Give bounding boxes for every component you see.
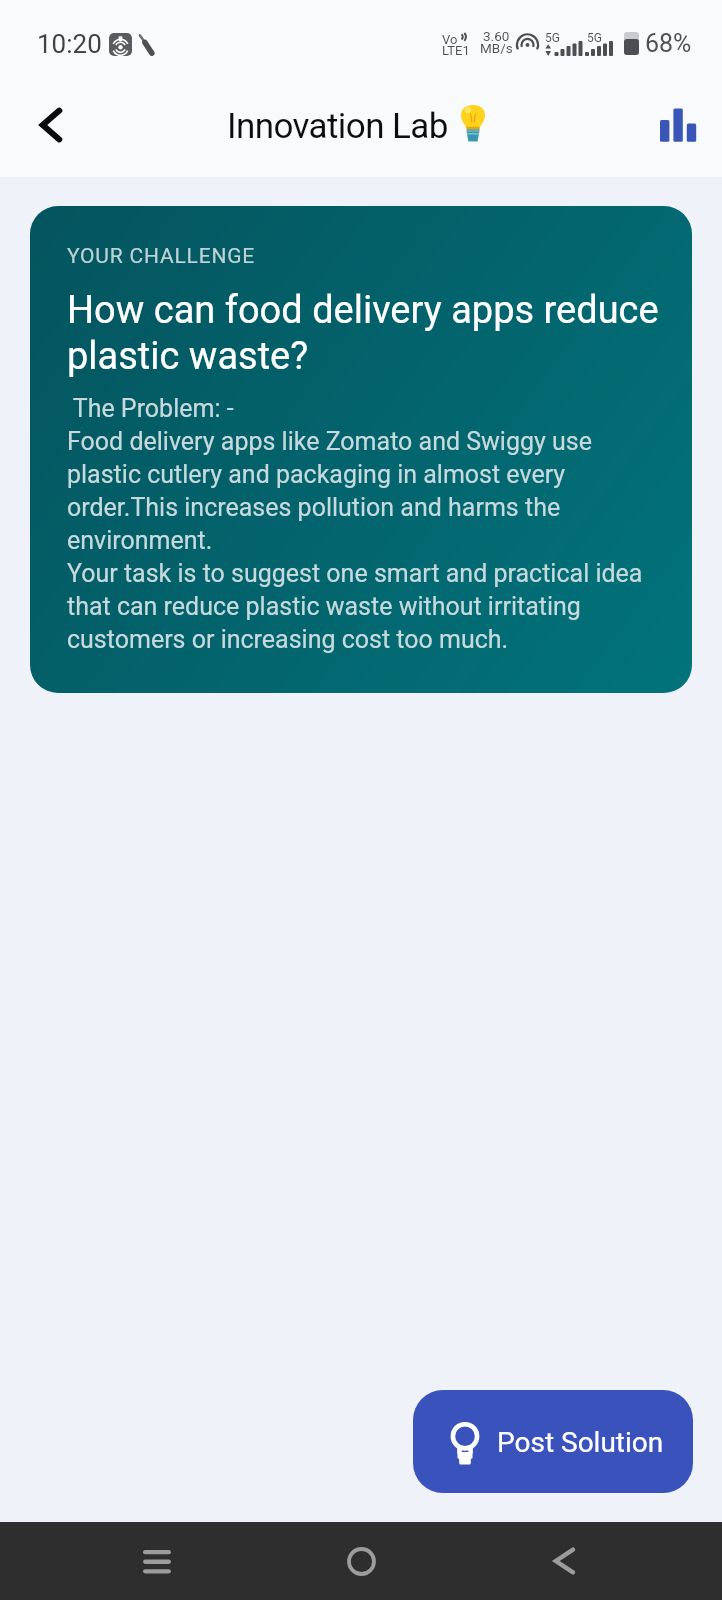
- button[interactable]: Back: [22, 96, 80, 154]
- staticText: The Problem: - Food delivery apps like Z…: [67, 394, 643, 654]
- staticText: Innovation Lab: [227, 106, 448, 147]
- staticText: 68%: [645, 29, 692, 58]
- staticText: 10:20: [37, 29, 102, 59]
- button[interactable]: Back: [535, 1531, 595, 1591]
- staticText: How can food delivery apps reduce plasti…: [67, 288, 659, 378]
- staticText: Post Solution: [497, 1426, 664, 1459]
- staticText: Vo: [442, 32, 458, 47]
- staticText: 5G: [587, 31, 602, 45]
- staticText: YOUR CHALLENGE: [67, 244, 256, 269]
- staticText: MB/s: [480, 40, 513, 56]
- button[interactable]: Recent apps: [127, 1531, 187, 1591]
- staticText: 5G: [545, 31, 560, 45]
- button[interactable]: Post Solution: [413, 1390, 693, 1493]
- button[interactable]: YOUR CHALLENGE: [30, 206, 692, 693]
- button[interactable]: Home: [331, 1531, 391, 1591]
- staticText: LTE1: [442, 43, 470, 58]
- staticText: 3.60: [483, 28, 510, 44]
- button[interactable]: Statistics: [648, 96, 706, 154]
